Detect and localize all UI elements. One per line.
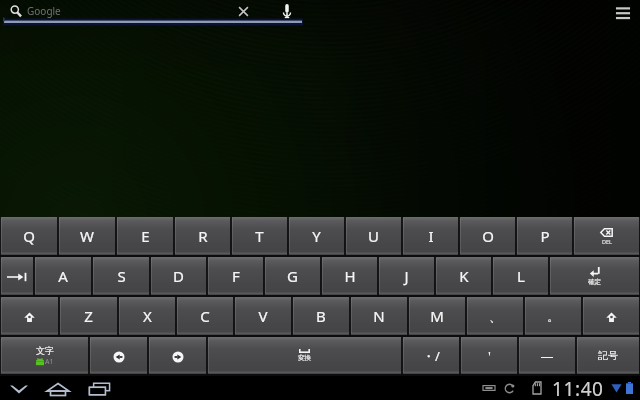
staticText: E <box>141 226 150 246</box>
staticText: P <box>540 226 550 246</box>
staticText: Q <box>23 226 35 246</box>
button[interactable]: Menu <box>612 2 634 24</box>
button[interactable]: 記号 <box>576 337 640 376</box>
staticText: 文字 <box>36 345 54 356</box>
staticText: L <box>517 266 525 286</box>
button[interactable]: 確定 <box>549 257 640 297</box>
button[interactable]: D <box>150 257 207 297</box>
staticText: — <box>540 347 554 365</box>
button[interactable]: Q <box>0 217 58 257</box>
button[interactable]: — <box>518 337 576 376</box>
staticText: 変換 <box>298 354 311 362</box>
staticText: X <box>143 306 152 326</box>
button[interactable]: F <box>207 257 264 297</box>
staticText: Z <box>84 306 93 326</box>
button[interactable]: P <box>516 217 573 257</box>
button[interactable]: U <box>345 217 402 257</box>
staticText: D <box>173 266 184 286</box>
staticText: B <box>316 306 326 326</box>
staticText: R <box>198 226 208 246</box>
staticText: G <box>287 266 298 286</box>
staticText: 確定 <box>588 278 601 286</box>
button[interactable]: C <box>176 297 234 337</box>
staticText: ・/ <box>422 347 440 365</box>
button[interactable]: Hide keyboard <box>0 376 37 400</box>
button[interactable]: Y <box>288 217 345 257</box>
button[interactable]: 変換 <box>207 337 402 376</box>
button[interactable]: E <box>116 217 174 257</box>
staticText: 11:40 <box>552 376 604 400</box>
button[interactable]: A <box>34 257 92 297</box>
staticText: 、 <box>489 308 502 324</box>
staticText: W <box>80 226 94 246</box>
staticText: 。 <box>547 308 560 324</box>
button[interactable]: K <box>435 257 492 297</box>
button[interactable] <box>148 337 207 376</box>
button[interactable]: M <box>408 297 466 337</box>
button[interactable]: DEL <box>573 217 640 257</box>
staticText: F <box>232 266 240 286</box>
staticText: M <box>430 306 444 326</box>
button[interactable]: Clear <box>232 0 254 22</box>
staticText: H <box>344 266 356 286</box>
button[interactable]: Home <box>37 376 79 400</box>
staticText: A <box>58 266 68 286</box>
staticText: K <box>459 266 469 286</box>
button[interactable]: J <box>378 257 435 297</box>
button[interactable]: V <box>234 297 292 337</box>
staticText: N <box>373 306 385 326</box>
button[interactable]: 、 <box>466 297 524 337</box>
button[interactable]: W <box>58 217 116 257</box>
button[interactable]: N <box>350 297 408 337</box>
staticText: T <box>255 226 264 246</box>
staticText: Google <box>27 4 61 18</box>
button[interactable]: B <box>292 297 350 337</box>
button[interactable]: Z <box>59 297 118 337</box>
button[interactable]: ' <box>460 337 518 376</box>
button[interactable]: 文字 <box>0 337 89 376</box>
staticText: A1 <box>45 357 54 367</box>
staticText: U <box>368 226 379 246</box>
staticText: J <box>404 266 409 286</box>
staticText: C <box>200 306 210 326</box>
staticText: I <box>428 226 434 246</box>
staticText: DEL <box>602 238 612 245</box>
button[interactable] <box>89 337 148 376</box>
button[interactable]: L <box>492 257 549 297</box>
button[interactable]: Recent apps <box>79 376 119 400</box>
staticText: Y <box>312 226 321 246</box>
button[interactable]: H <box>321 257 378 297</box>
staticText: O <box>482 226 494 246</box>
button[interactable]: S <box>92 257 150 297</box>
button[interactable]: R <box>174 217 231 257</box>
staticText: S <box>117 266 126 286</box>
staticText: V <box>258 306 268 326</box>
button[interactable]: T <box>231 217 288 257</box>
staticText: ' <box>488 347 491 365</box>
button[interactable]: I <box>402 217 459 257</box>
button[interactable] <box>0 257 34 297</box>
staticText: 記号 <box>598 349 618 362</box>
button[interactable]: Voice search <box>279 0 295 22</box>
button[interactable] <box>0 297 59 337</box>
button[interactable]: Google <box>0 0 304 26</box>
button[interactable]: X <box>118 297 176 337</box>
button[interactable]: O <box>459 217 516 257</box>
button[interactable]: 。 <box>524 297 582 337</box>
button[interactable] <box>582 297 640 337</box>
button[interactable]: ・/ <box>402 337 460 376</box>
button[interactable]: G <box>264 257 321 297</box>
